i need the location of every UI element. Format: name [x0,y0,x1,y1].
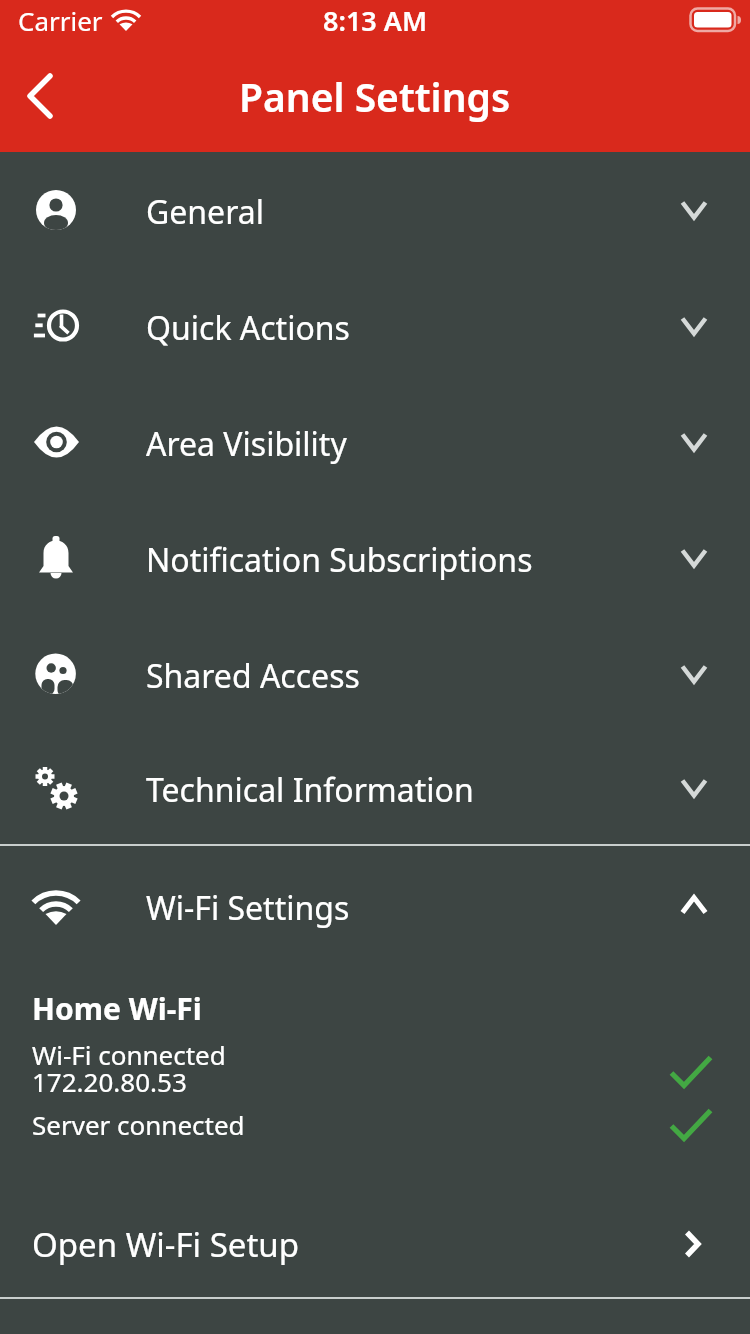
staticText: 8:13 AM [323,2,428,39]
staticText: General [146,190,264,234]
button[interactable]: Notification Subscriptions [0,500,750,616]
button[interactable]: Quick Actions [0,268,750,384]
button[interactable] [0,40,80,152]
staticText: Notification Subscriptions [146,538,533,582]
staticText: Wi-Fi Settings [146,886,350,930]
staticText: Technical Information [146,768,474,812]
staticText: Wi-Fi connected [32,1037,226,1072]
button[interactable]: Technical Information [0,732,750,844]
staticText: Shared Access [146,654,360,698]
button[interactable]: Area Visibility [0,384,750,500]
staticText: Panel Settings [239,70,511,123]
staticText: Open Wi-Fi Setup [32,1222,300,1267]
button[interactable]: Open Wi-Fi Setup [0,1207,750,1281]
staticText: Area Visibility [146,422,347,466]
button[interactable]: Wi-Fi Settings [0,846,750,966]
button[interactable]: Shared Access [0,616,750,732]
staticText: Quick Actions [146,306,350,350]
staticText: Home Wi-Fi [32,988,202,1029]
staticText: Carrier [18,3,103,38]
staticText: Server connected [32,1107,245,1142]
button[interactable]: General [0,152,750,268]
staticText: 172.20.80.53 [32,1064,187,1099]
